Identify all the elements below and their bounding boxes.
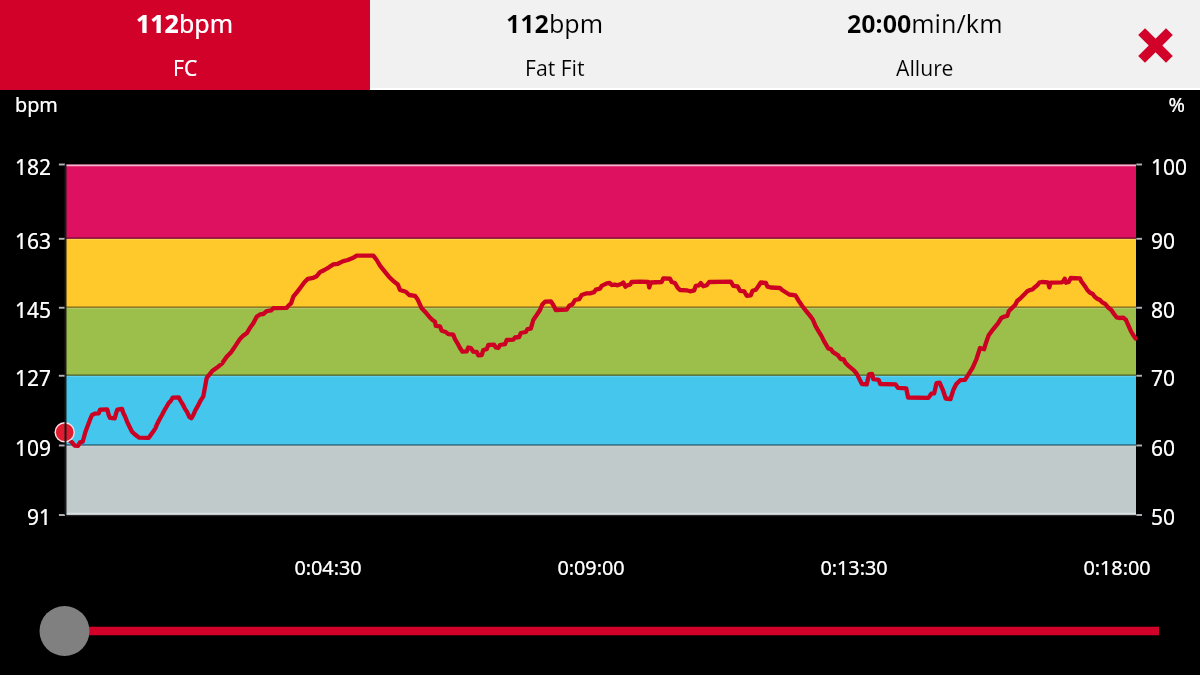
- staticText: 20:00min/km: [847, 6, 1003, 40]
- staticText: 127: [1, 364, 51, 393]
- staticText: 112bpm: [136, 6, 234, 40]
- staticText: 70: [1151, 364, 1176, 393]
- staticText: bpm: [15, 91, 58, 118]
- staticText: 182: [1, 153, 51, 182]
- staticText: 109: [1, 434, 51, 463]
- button[interactable]: Scrub position: [39, 606, 90, 657]
- staticText: 0:04:30: [258, 554, 398, 581]
- staticText: 91: [1, 503, 51, 532]
- button[interactable]: Close: [1110, 0, 1200, 90]
- staticText: 0:18:00: [1047, 554, 1187, 581]
- staticText: 100: [1151, 153, 1188, 182]
- staticText: 80: [1151, 296, 1176, 325]
- button[interactable]: 112bpm: [0, 0, 370, 90]
- staticText: 0:13:30: [784, 554, 924, 581]
- staticText: 60: [1151, 434, 1176, 463]
- button[interactable]: 20:00min/km: [740, 0, 1110, 90]
- staticText: FC: [173, 54, 198, 83]
- staticText: Allure: [896, 54, 954, 83]
- staticText: 163: [1, 227, 51, 256]
- staticText: Fat Fit: [525, 54, 585, 83]
- staticText: 145: [1, 296, 51, 325]
- button[interactable]: 112bpm: [370, 0, 740, 90]
- staticText: 112bpm: [506, 6, 604, 40]
- staticText: %: [1130, 91, 1185, 118]
- staticText: 50: [1151, 503, 1176, 532]
- staticText: 0:09:00: [521, 554, 661, 581]
- staticText: 90: [1151, 227, 1176, 256]
